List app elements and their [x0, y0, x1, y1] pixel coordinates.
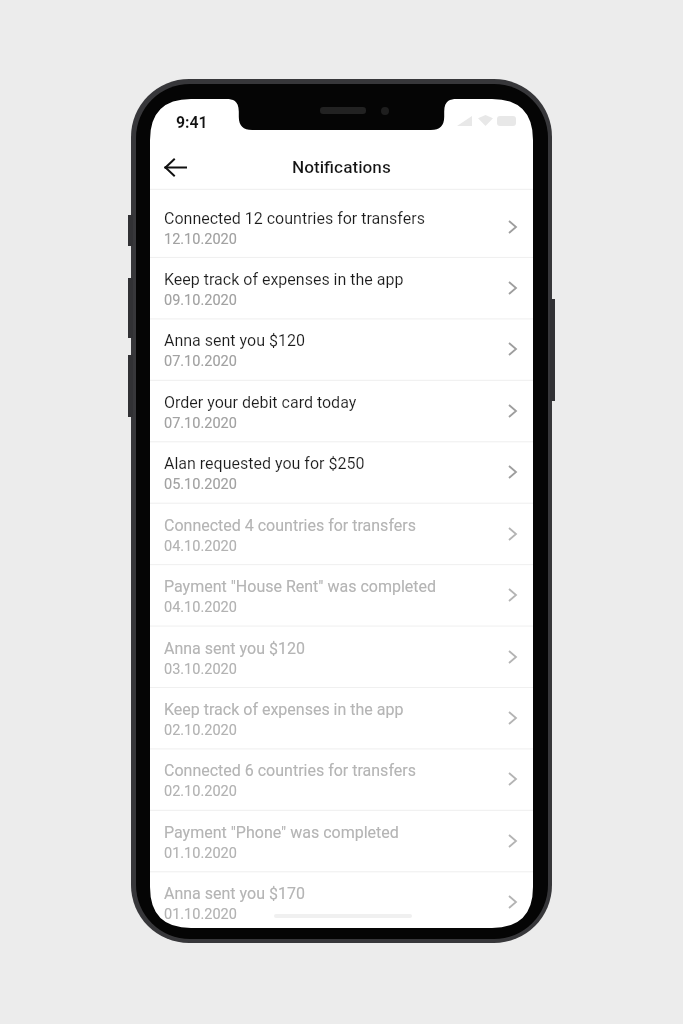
button[interactable]: Payment "House Rent" was completed	[150, 564, 533, 625]
staticText: Order your debit card today	[164, 393, 357, 412]
button[interactable]: Keep track of expenses in the app	[150, 687, 533, 748]
staticText: Anna sent you $120	[164, 331, 305, 350]
staticText: 02.10.2020	[164, 783, 237, 800]
staticText: 01.10.2020	[164, 906, 237, 923]
staticText: Connected 4 countries for transfers	[164, 516, 416, 535]
button[interactable]: Connected 6 countries for transfers	[150, 748, 533, 809]
staticText: Keep track of expenses in the app	[164, 270, 404, 289]
button[interactable]: Connected 12 countries for transfers	[150, 196, 533, 257]
button[interactable]: Anna sent you $170	[150, 871, 533, 928]
button[interactable]: Order your debit card today	[150, 380, 533, 441]
staticText: 02.10.2020	[164, 722, 237, 739]
staticText: Alan requested you for $250	[164, 454, 365, 473]
staticText: Connected 6 countries for transfers	[164, 761, 416, 780]
staticText: 09.10.2020	[164, 292, 237, 309]
button[interactable]: Back	[152, 144, 198, 190]
staticText: Notifications	[292, 157, 391, 177]
staticText: Connected 12 countries for transfers	[164, 209, 425, 228]
staticText: 04.10.2020	[164, 538, 237, 555]
staticText: 04.10.2020	[164, 599, 237, 616]
staticText: Payment "House Rent" was completed	[164, 577, 437, 596]
staticText: Payment "Phone" was completed	[164, 823, 399, 842]
staticText: Keep track of expenses in the app	[164, 700, 404, 719]
button[interactable]: Anna sent you $120	[150, 626, 533, 687]
staticText: 01.10.2020	[164, 845, 237, 862]
staticText: 07.10.2020	[164, 353, 237, 370]
button[interactable]: Alan requested you for $250	[150, 441, 533, 502]
staticText: Anna sent you $120	[164, 639, 305, 658]
staticText: 12.10.2020	[164, 231, 237, 248]
button[interactable]: Keep track of expenses in the app	[150, 257, 533, 318]
button[interactable]: Payment "Phone" was completed	[150, 810, 533, 871]
staticText: Anna sent you $170	[164, 884, 305, 903]
button[interactable]: Anna sent you $120	[150, 318, 533, 379]
staticText: 9:41	[176, 113, 208, 132]
staticText: 05.10.2020	[164, 476, 237, 493]
staticText: 03.10.2020	[164, 661, 237, 678]
button[interactable]: Connected 4 countries for transfers	[150, 503, 533, 564]
staticText: 07.10.2020	[164, 415, 237, 432]
